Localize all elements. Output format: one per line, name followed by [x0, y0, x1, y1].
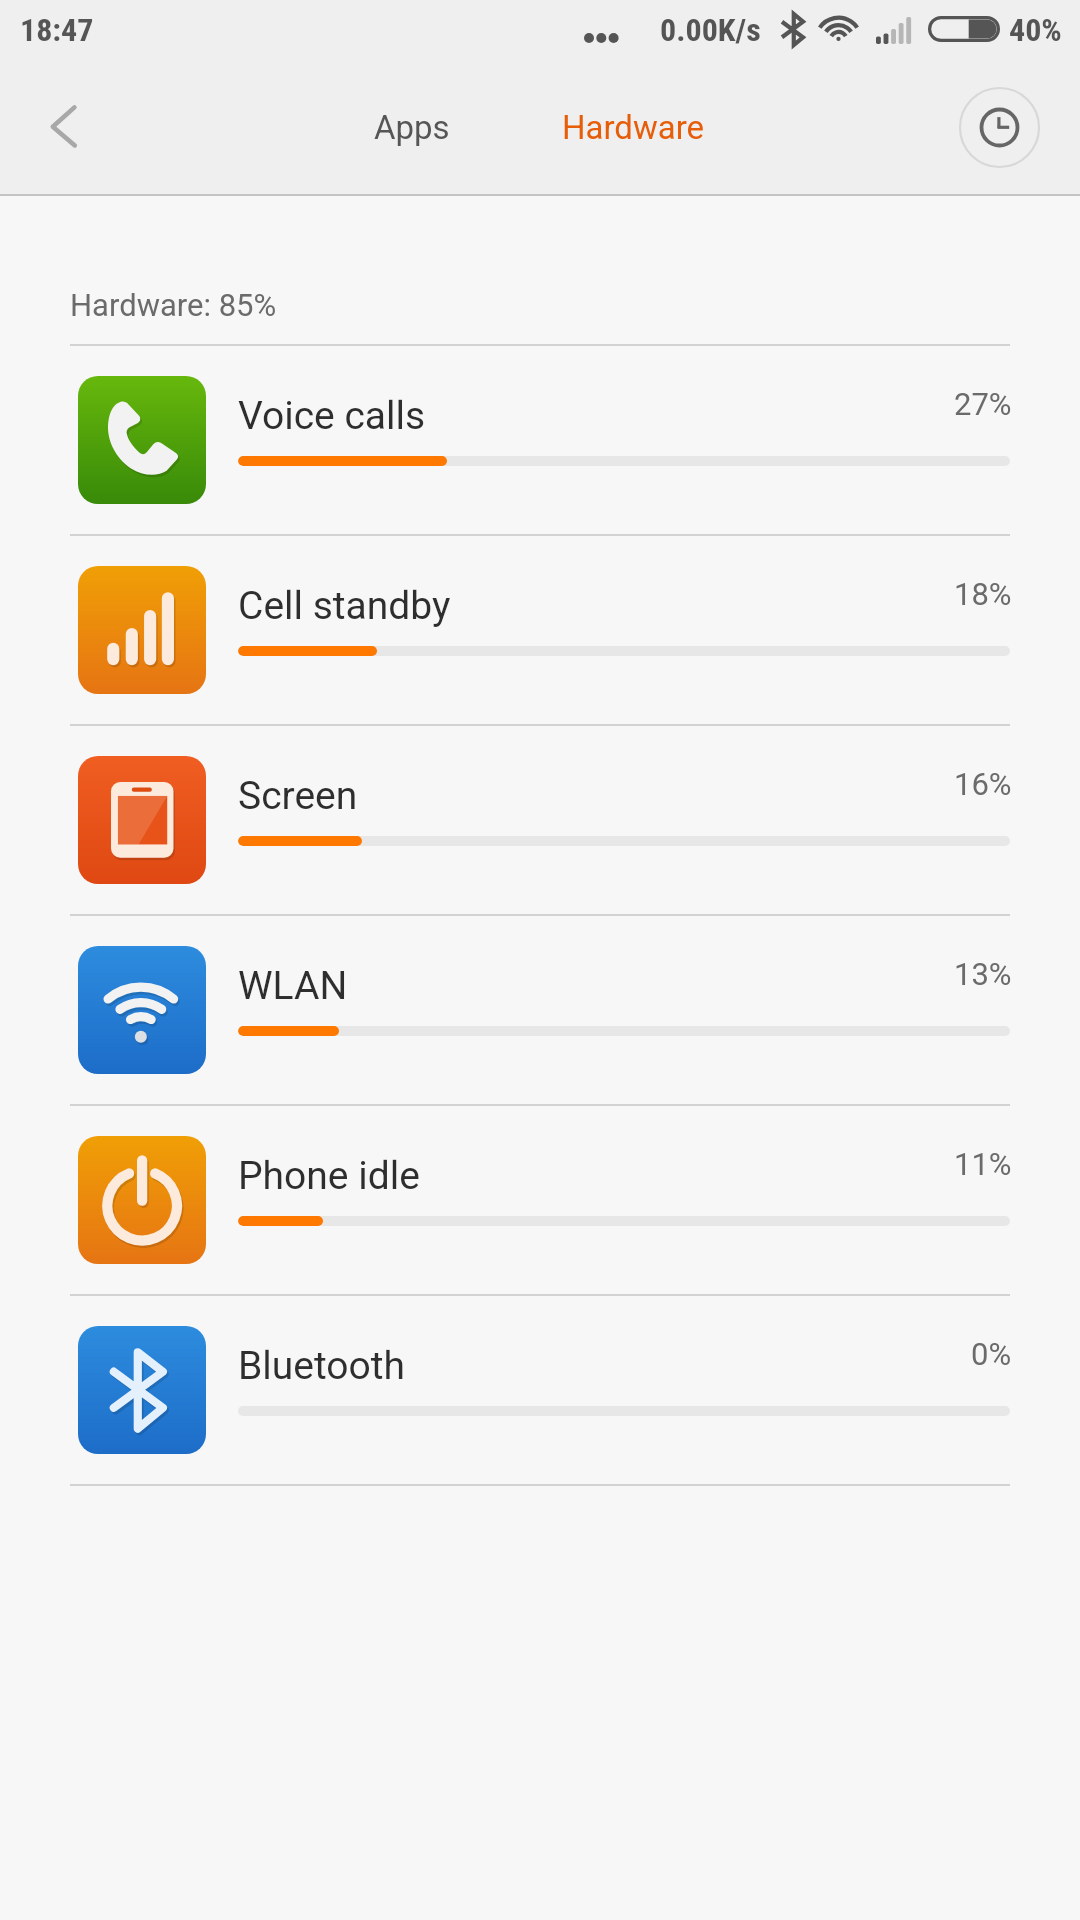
button[interactable]: Screen	[0, 726, 1080, 914]
staticText: 27%	[954, 386, 1012, 422]
staticText: 16%	[954, 766, 1012, 802]
button[interactable]: Hardware	[533, 68, 733, 196]
button[interactable]: Cell standby	[0, 536, 1080, 724]
staticText: 40%	[1009, 11, 1062, 49]
staticText: 18%	[954, 576, 1012, 612]
staticText: Cell standby	[238, 583, 451, 629]
button[interactable]: Usage history	[959, 87, 1040, 168]
button[interactable]: Apps	[332, 68, 492, 196]
staticText: Hardware	[562, 108, 705, 147]
staticText: Voice calls	[238, 393, 426, 439]
staticText: Phone idle	[238, 1153, 420, 1199]
staticText: Bluetooth	[238, 1343, 406, 1389]
staticText: WLAN	[238, 963, 348, 1009]
button[interactable]: WLAN	[0, 916, 1080, 1104]
staticText: 18:47	[20, 11, 94, 49]
staticText: 0%	[971, 1336, 1012, 1372]
button[interactable]: Bluetooth	[0, 1296, 1080, 1484]
staticText: 13%	[954, 956, 1012, 992]
staticText: 11%	[954, 1146, 1012, 1182]
staticText: 0.00K/s	[660, 11, 761, 49]
button[interactable]: Phone idle	[0, 1106, 1080, 1294]
button[interactable]: Back	[0, 74, 116, 190]
staticText: Apps	[374, 108, 450, 147]
staticText: Hardware: 85%	[70, 287, 277, 323]
staticText: Screen	[238, 773, 358, 819]
button[interactable]: Voice calls	[0, 346, 1080, 534]
